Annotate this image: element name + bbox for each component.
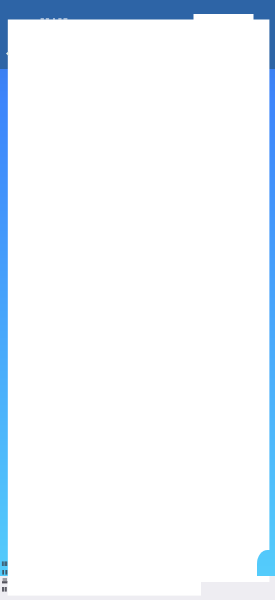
button[interactable]: Action	[257, 550, 275, 576]
button[interactable]: Navigate back	[0, 44, 16, 64]
button[interactable]: App bar	[0, 0, 275, 20]
